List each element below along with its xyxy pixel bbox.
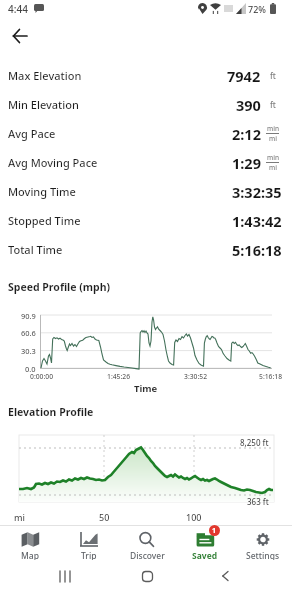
- staticText: 5:16:18: [259, 372, 283, 381]
- button[interactable]: Map: [0, 526, 59, 560]
- staticText: 7942: [227, 66, 261, 86]
- button[interactable]: [52, 564, 78, 588]
- staticText: Max Elevation: [8, 68, 82, 83]
- staticText: mi: [269, 163, 277, 172]
- staticText: 363 ft: [247, 496, 269, 507]
- staticText: 1:43:42: [232, 211, 282, 231]
- staticText: mi: [269, 134, 277, 143]
- staticText: 50: [99, 511, 110, 523]
- staticText: Map: [21, 550, 39, 560]
- button[interactable]: Discover: [118, 526, 176, 560]
- staticText: 3:32:35: [232, 182, 282, 202]
- staticText: Stopped Time: [8, 213, 81, 228]
- staticText: Time: [134, 382, 158, 395]
- staticText: 30.3: [21, 346, 36, 356]
- staticText: Settings: [246, 550, 280, 560]
- staticText: Speed Profile (mph): [8, 280, 111, 294]
- staticText: ft: [270, 70, 276, 81]
- staticText: 1:45:26: [107, 372, 131, 381]
- staticText: mi: [14, 511, 25, 523]
- staticText: 2:12: [232, 124, 261, 144]
- staticText: Min Elevation: [8, 97, 79, 112]
- staticText: 1: [212, 526, 217, 536]
- button[interactable]: [5, 21, 35, 51]
- staticText: Avg Pace: [8, 126, 56, 141]
- staticText: 0:00:00: [30, 372, 54, 381]
- staticText: Total Time: [8, 242, 63, 257]
- button[interactable]: Settings: [234, 526, 292, 560]
- staticText: min: [267, 153, 279, 162]
- staticText: 3:30:52: [184, 372, 208, 381]
- staticText: 1:29: [232, 153, 261, 173]
- button[interactable]: Trip: [59, 526, 118, 560]
- button[interactable]: [134, 564, 160, 588]
- staticText: 4:44: [8, 2, 28, 15]
- button[interactable]: Saved: [176, 526, 234, 560]
- staticText: Trip: [81, 550, 97, 560]
- staticText: Discover: [130, 550, 165, 560]
- staticText: 72%: [248, 3, 266, 15]
- staticText: 5:16:18: [232, 240, 282, 260]
- staticText: Avg Moving Pace: [8, 155, 98, 170]
- button[interactable]: [212, 564, 238, 588]
- staticText: 0.0: [25, 364, 36, 374]
- staticText: 90.9: [21, 311, 36, 321]
- staticText: 390: [236, 95, 261, 115]
- staticText: ft: [270, 99, 276, 110]
- staticText: min: [267, 124, 279, 133]
- staticText: Elevation Profile: [8, 405, 94, 419]
- staticText: 8,250 ft: [240, 437, 269, 448]
- staticText: 60.6: [21, 328, 36, 338]
- staticText: 100: [186, 511, 202, 523]
- staticText: Moving Time: [8, 184, 76, 199]
- staticText: Saved: [192, 550, 218, 560]
